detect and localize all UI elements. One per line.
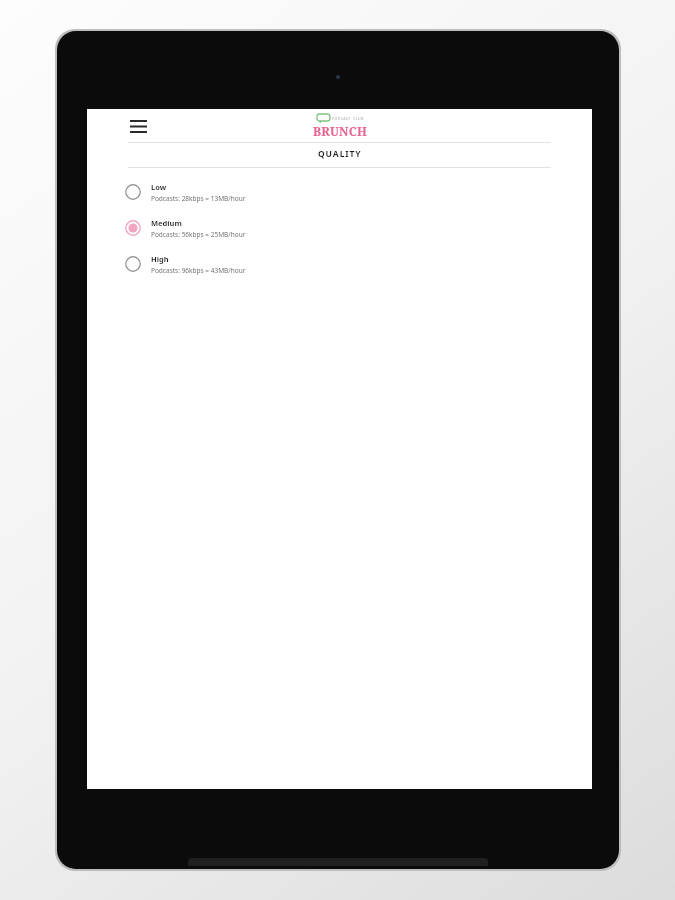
staticText: PODCAST CLUB <box>332 116 364 121</box>
staticText: Podcasts: 28kbps = 13MB/hour <box>151 194 246 203</box>
staticText: High <box>151 254 169 264</box>
button[interactable]: Low <box>87 174 592 210</box>
button[interactable]: Brunch home <box>313 114 367 139</box>
button[interactable]: Medium <box>87 210 592 246</box>
button[interactable]: Open navigation menu <box>125 113 151 139</box>
staticText: BRUNCH <box>313 123 367 139</box>
staticText: Low <box>151 182 167 192</box>
staticText: Medium <box>151 218 182 228</box>
staticText: Podcasts: 96kbps = 43MB/hour <box>151 266 246 275</box>
button[interactable]: High <box>87 246 592 282</box>
staticText: Podcasts: 56kbps = 25MB/hour <box>151 230 246 239</box>
staticText: QUALITY <box>318 148 362 160</box>
